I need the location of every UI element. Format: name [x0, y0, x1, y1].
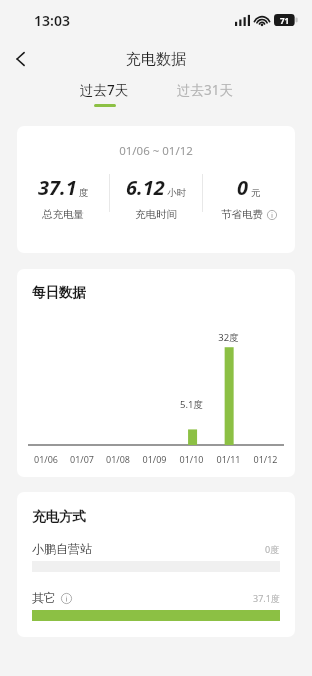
staticText: 节省电费 — [221, 208, 263, 221]
staticText: 0度 — [265, 543, 280, 555]
staticText: 充电方式 — [32, 508, 86, 525]
staticText: 每日数据 — [32, 284, 86, 301]
button[interactable]: Back — [0, 40, 40, 78]
staticText: 01/09 — [136, 453, 173, 465]
staticText: 01/06 — [28, 453, 64, 465]
staticText: 5.1度 — [173, 398, 210, 411]
staticText: 01/11 — [210, 453, 247, 465]
staticText: 71 — [280, 15, 290, 26]
button[interactable]: 过去7天 — [74, 78, 135, 110]
staticText: 01/10 — [173, 453, 210, 465]
staticText: 总充电量 — [42, 208, 84, 221]
button[interactable]: Info — [266, 209, 277, 220]
staticText: 01/06 ~ 01/12 — [17, 143, 295, 159]
staticText: 0 — [237, 174, 249, 201]
button[interactable]: Info — [60, 592, 72, 604]
staticText: 过去7天 — [80, 81, 129, 99]
staticText: 6.12 — [126, 174, 165, 201]
staticText: 度 — [79, 187, 89, 199]
staticText: 13:03 — [34, 11, 70, 30]
staticText: 37.1 — [38, 174, 77, 201]
staticText: 其它 — [32, 590, 56, 605]
staticText: 充电数据 — [126, 50, 186, 69]
button[interactable]: 过去31天 — [171, 78, 239, 110]
staticText: 充电时间 — [135, 208, 177, 221]
staticText: 过去31天 — [177, 81, 233, 99]
staticText: 小时 — [167, 187, 186, 199]
staticText: 32度 — [210, 331, 247, 344]
staticText: 元 — [251, 187, 261, 199]
staticText: 小鹏自营站 — [32, 541, 92, 556]
staticText: 01/08 — [100, 453, 136, 465]
staticText: 01/12 — [247, 453, 284, 465]
staticText: 01/07 — [64, 453, 100, 465]
staticText: 37.1度 — [253, 592, 280, 604]
